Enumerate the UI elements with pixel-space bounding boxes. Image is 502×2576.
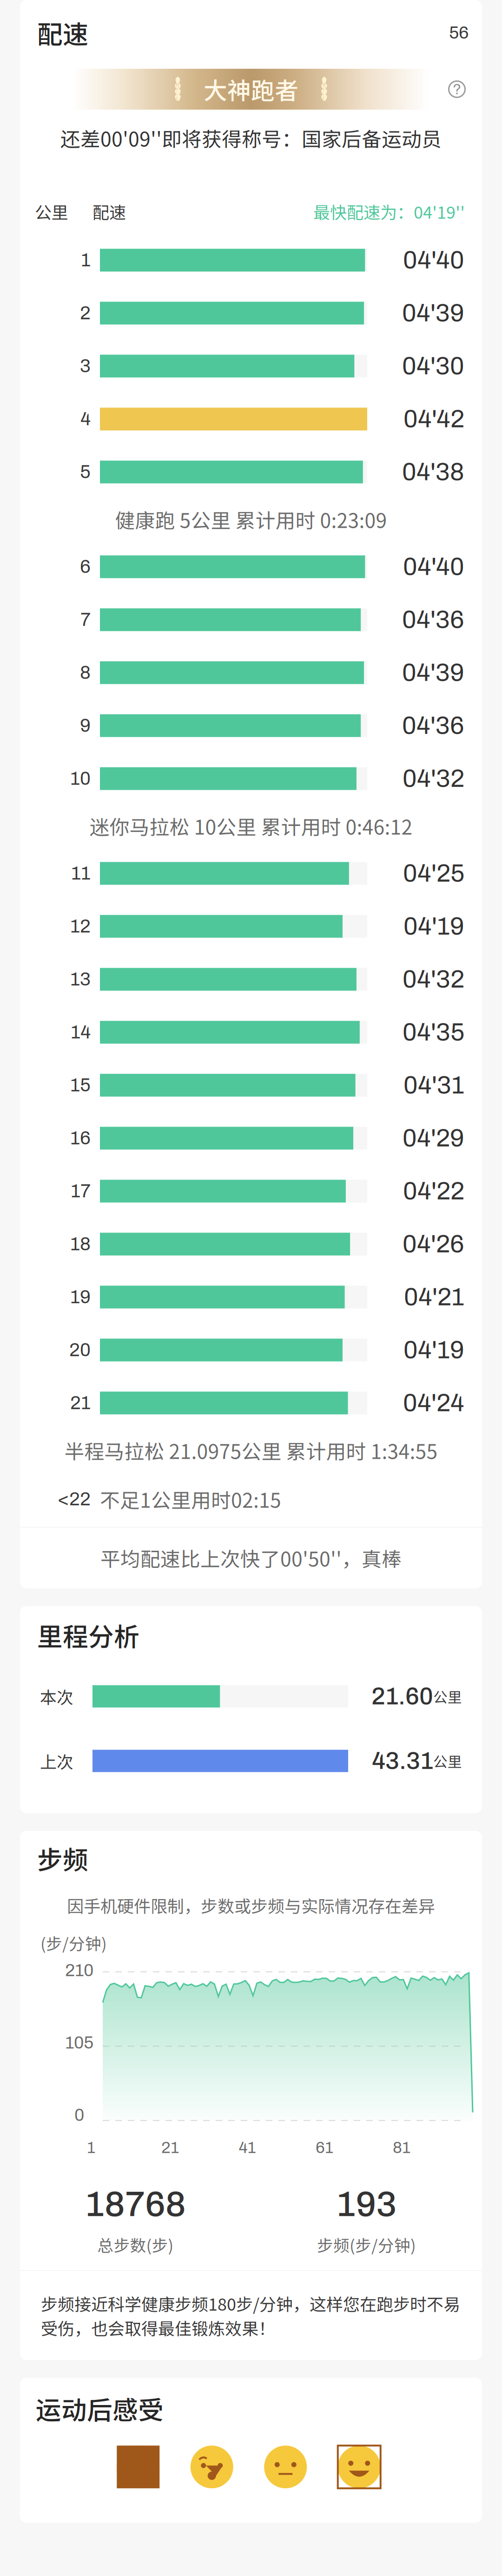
staticText: 04'36 bbox=[402, 606, 464, 633]
staticText: 公里 bbox=[35, 199, 68, 223]
staticText: 1 bbox=[87, 2139, 95, 2156]
staticText: 本次 bbox=[40, 1684, 73, 1708]
staticText: 04'26 bbox=[403, 1231, 464, 1258]
staticText: 8 bbox=[80, 663, 91, 683]
staticText: 因手机硬件限制，步数或步频与实际情况存在差异 bbox=[67, 1893, 435, 1917]
staticText: 04'32 bbox=[403, 765, 464, 792]
staticText: 21 bbox=[161, 2139, 179, 2156]
staticText: 04'32 bbox=[403, 966, 464, 993]
staticText: 15 bbox=[70, 1075, 91, 1095]
staticText: 还差00'09''即将获得称号：国家后备运动员 bbox=[60, 124, 442, 152]
button[interactable]: 感受2 bbox=[190, 2446, 233, 2488]
staticText: 20 bbox=[69, 1340, 91, 1360]
button[interactable]: 感受3 bbox=[264, 2446, 307, 2488]
staticText: 9 bbox=[80, 716, 91, 736]
staticText: 6 bbox=[80, 557, 91, 577]
staticText: 105 bbox=[65, 2033, 93, 2052]
staticText: 不足1公里用时02:15 bbox=[100, 1485, 281, 1513]
staticText: 43.31 bbox=[372, 1748, 433, 1774]
staticText: 13 bbox=[70, 969, 91, 989]
button[interactable]: 感受1 bbox=[117, 2446, 160, 2488]
staticText: <22 bbox=[58, 1489, 91, 1509]
staticText: 5 bbox=[80, 462, 91, 482]
staticText: 上次 bbox=[40, 1749, 73, 1773]
staticText: 平均配速比上次快了00'50''，真棒 bbox=[100, 1544, 402, 1572]
staticText: 04'22 bbox=[403, 1178, 464, 1205]
staticText: 步频 bbox=[37, 1840, 88, 1877]
staticText: 配速 bbox=[37, 14, 88, 51]
staticText: 193 bbox=[336, 2185, 397, 2224]
staticText: 04'29 bbox=[403, 1125, 464, 1152]
staticText: 步频(步/分钟) bbox=[317, 2233, 416, 2256]
staticText: 04'25 bbox=[403, 860, 464, 887]
staticText: 04'40 bbox=[403, 247, 464, 274]
staticText: 18 bbox=[70, 1234, 91, 1254]
button[interactable]: 感受4 bbox=[338, 2446, 381, 2488]
staticText: 0 bbox=[74, 2106, 84, 2124]
staticText: 04'38 bbox=[402, 459, 464, 485]
staticText: 公里 bbox=[433, 1686, 462, 1707]
staticText: 大神跑者 bbox=[204, 72, 298, 106]
staticText: 配速 bbox=[92, 199, 126, 223]
staticText: 61 bbox=[316, 2139, 333, 2156]
staticText: 04'21 bbox=[404, 1284, 464, 1311]
staticText: 迷你马拉松 10公里 累计用时 0:46:12 bbox=[89, 812, 413, 840]
staticText: 总步数(步) bbox=[97, 2233, 174, 2256]
staticText: 04'24 bbox=[403, 1390, 464, 1416]
staticText: 56 bbox=[449, 23, 469, 42]
staticText: 3 bbox=[80, 356, 91, 376]
staticText: 10 bbox=[70, 768, 91, 789]
staticText: 210 bbox=[65, 1961, 93, 1980]
staticText: 19 bbox=[70, 1287, 91, 1307]
staticText: 半程马拉松 21.0975公里 累计用时 1:34:55 bbox=[64, 1436, 438, 1465]
staticText: 04'36 bbox=[402, 712, 464, 739]
staticText: 04'30 bbox=[402, 353, 464, 380]
staticText: 04'19 bbox=[403, 1337, 464, 1363]
staticText: 运动后感受 bbox=[36, 2390, 164, 2427]
staticText: 健康跑 5公里 累计用时 0:23:09 bbox=[115, 505, 387, 534]
staticText: 7 bbox=[80, 610, 91, 630]
staticText: 04'39 bbox=[402, 300, 464, 327]
staticText: 41 bbox=[239, 2139, 256, 2156]
button[interactable]: 称号说明 bbox=[444, 77, 469, 102]
staticText: 21 bbox=[70, 1393, 91, 1413]
staticText: 1 bbox=[81, 250, 91, 270]
staticText: 14 bbox=[71, 1022, 91, 1042]
staticText: 21.60 bbox=[371, 1683, 433, 1709]
staticText: ? bbox=[453, 81, 461, 97]
staticText: 04'40 bbox=[403, 553, 464, 580]
staticText: 公里 bbox=[433, 1751, 462, 1771]
staticText: 04'31 bbox=[403, 1072, 464, 1099]
staticText: 17 bbox=[71, 1181, 91, 1201]
staticText: 步频接近科学健康步频180步/分钟，这样您在跑步时不易受伤，也会取得最佳锻炼效果… bbox=[41, 2291, 460, 2340]
staticText: 4 bbox=[80, 409, 91, 429]
staticText: 04'19 bbox=[403, 913, 464, 940]
staticText: 04'39 bbox=[402, 659, 464, 686]
staticText: 11 bbox=[71, 863, 91, 883]
staticText: 2 bbox=[80, 303, 91, 323]
staticText: 81 bbox=[393, 2139, 410, 2156]
staticText: 最快配速为：04'19'' bbox=[313, 199, 465, 223]
staticText: 04'42 bbox=[403, 406, 464, 433]
staticText: 18768 bbox=[85, 2185, 186, 2224]
staticText: 12 bbox=[70, 916, 91, 936]
staticText: 16 bbox=[70, 1128, 91, 1148]
staticText: 04'35 bbox=[403, 1019, 464, 1046]
staticText: (步/分钟) bbox=[40, 1931, 107, 1954]
staticText: 里程分析 bbox=[37, 1617, 139, 1653]
